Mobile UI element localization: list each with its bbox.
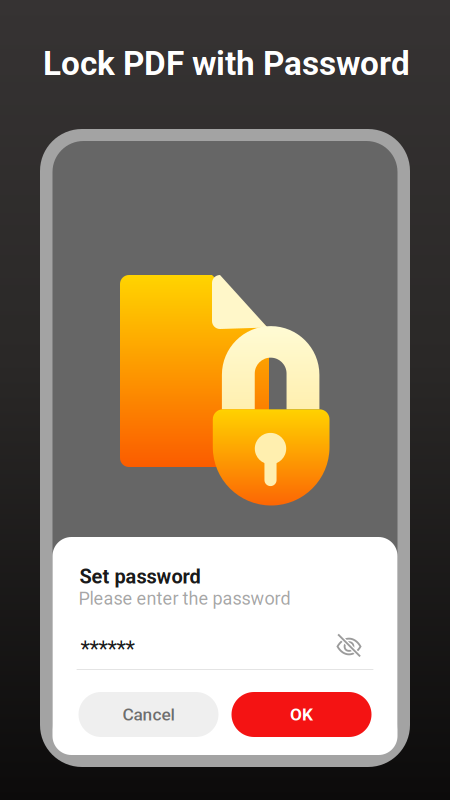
- staticText: Lock PDF with Password: [43, 44, 410, 83]
- staticText: Set password: [79, 565, 200, 588]
- button[interactable]: Cancel: [78, 692, 218, 737]
- staticText: ******: [80, 636, 134, 662]
- staticText: OK: [290, 704, 313, 725]
- button[interactable]: OK: [231, 692, 371, 737]
- staticText: Cancel: [122, 704, 174, 725]
- staticText: Please enter the password: [78, 588, 290, 609]
- button[interactable]: Show password: [336, 634, 361, 659]
